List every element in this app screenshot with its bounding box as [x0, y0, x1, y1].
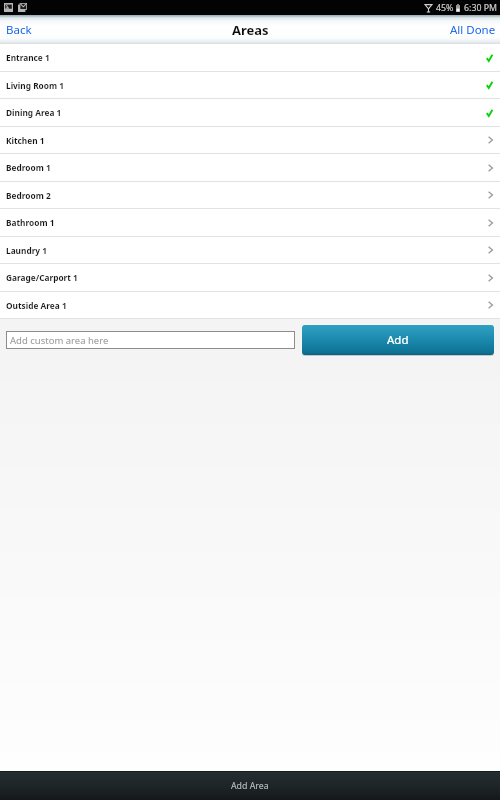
staticText: Bedroom 2: [6, 190, 51, 201]
other: Open: [488, 164, 493, 172]
other: Battery 45 percent: [456, 4, 460, 12]
button[interactable]: Add Area: [0, 771, 500, 800]
staticText: Kitchen 1: [6, 135, 45, 146]
button[interactable]: Dining Area 1: [0, 99, 500, 126]
button[interactable]: Add: [302, 325, 494, 355]
button[interactable]: All Done: [440, 17, 500, 43]
button[interactable]: Bedroom 2: [0, 182, 500, 208]
staticText: Add custom area here: [10, 334, 109, 347]
other: Screenshot captured: [4, 3, 13, 12]
staticText: Garage/Carport 1: [6, 272, 78, 283]
staticText: All Done: [450, 22, 496, 38]
other: New email: [18, 3, 27, 12]
staticText: Bathroom 1: [6, 217, 55, 228]
staticText: Dining Area 1: [6, 107, 62, 118]
staticText: 6:30 PM: [464, 2, 498, 14]
staticText: Bedroom 1: [6, 162, 51, 173]
button[interactable]: Garage/Carport 1: [0, 264, 500, 291]
button[interactable]: Add custom area here: [7, 332, 294, 348]
staticText: Add Area: [231, 780, 269, 792]
button[interactable]: Back: [0, 17, 42, 43]
other: Open: [488, 136, 493, 144]
staticText: Laundry 1: [6, 245, 47, 256]
other: Wi-Fi: [425, 4, 432, 12]
other: Done: [486, 81, 493, 89]
other: Open: [488, 219, 493, 227]
other: Open: [488, 274, 493, 282]
other: Open: [488, 301, 493, 309]
staticText: Add: [387, 332, 409, 348]
button[interactable]: Kitchen 1: [0, 127, 500, 153]
button[interactable]: Bedroom 1: [0, 154, 500, 181]
button[interactable]: Bathroom 1: [0, 209, 500, 236]
other: Open: [488, 191, 493, 199]
other: Done: [486, 54, 493, 62]
button[interactable]: Living Room 1: [0, 72, 500, 98]
other: Open: [488, 246, 493, 254]
button[interactable]: Laundry 1: [0, 237, 500, 263]
staticText: Outside Area 1: [6, 300, 67, 311]
staticText: Back: [6, 22, 32, 38]
staticText: 45%: [436, 2, 454, 14]
staticText: Living Room 1: [6, 80, 64, 91]
button[interactable]: Entrance 1: [0, 44, 500, 71]
staticText: Areas: [232, 21, 269, 39]
other: Done: [486, 109, 493, 117]
staticText: Entrance 1: [6, 52, 50, 63]
button[interactable]: Outside Area 1: [0, 292, 500, 318]
